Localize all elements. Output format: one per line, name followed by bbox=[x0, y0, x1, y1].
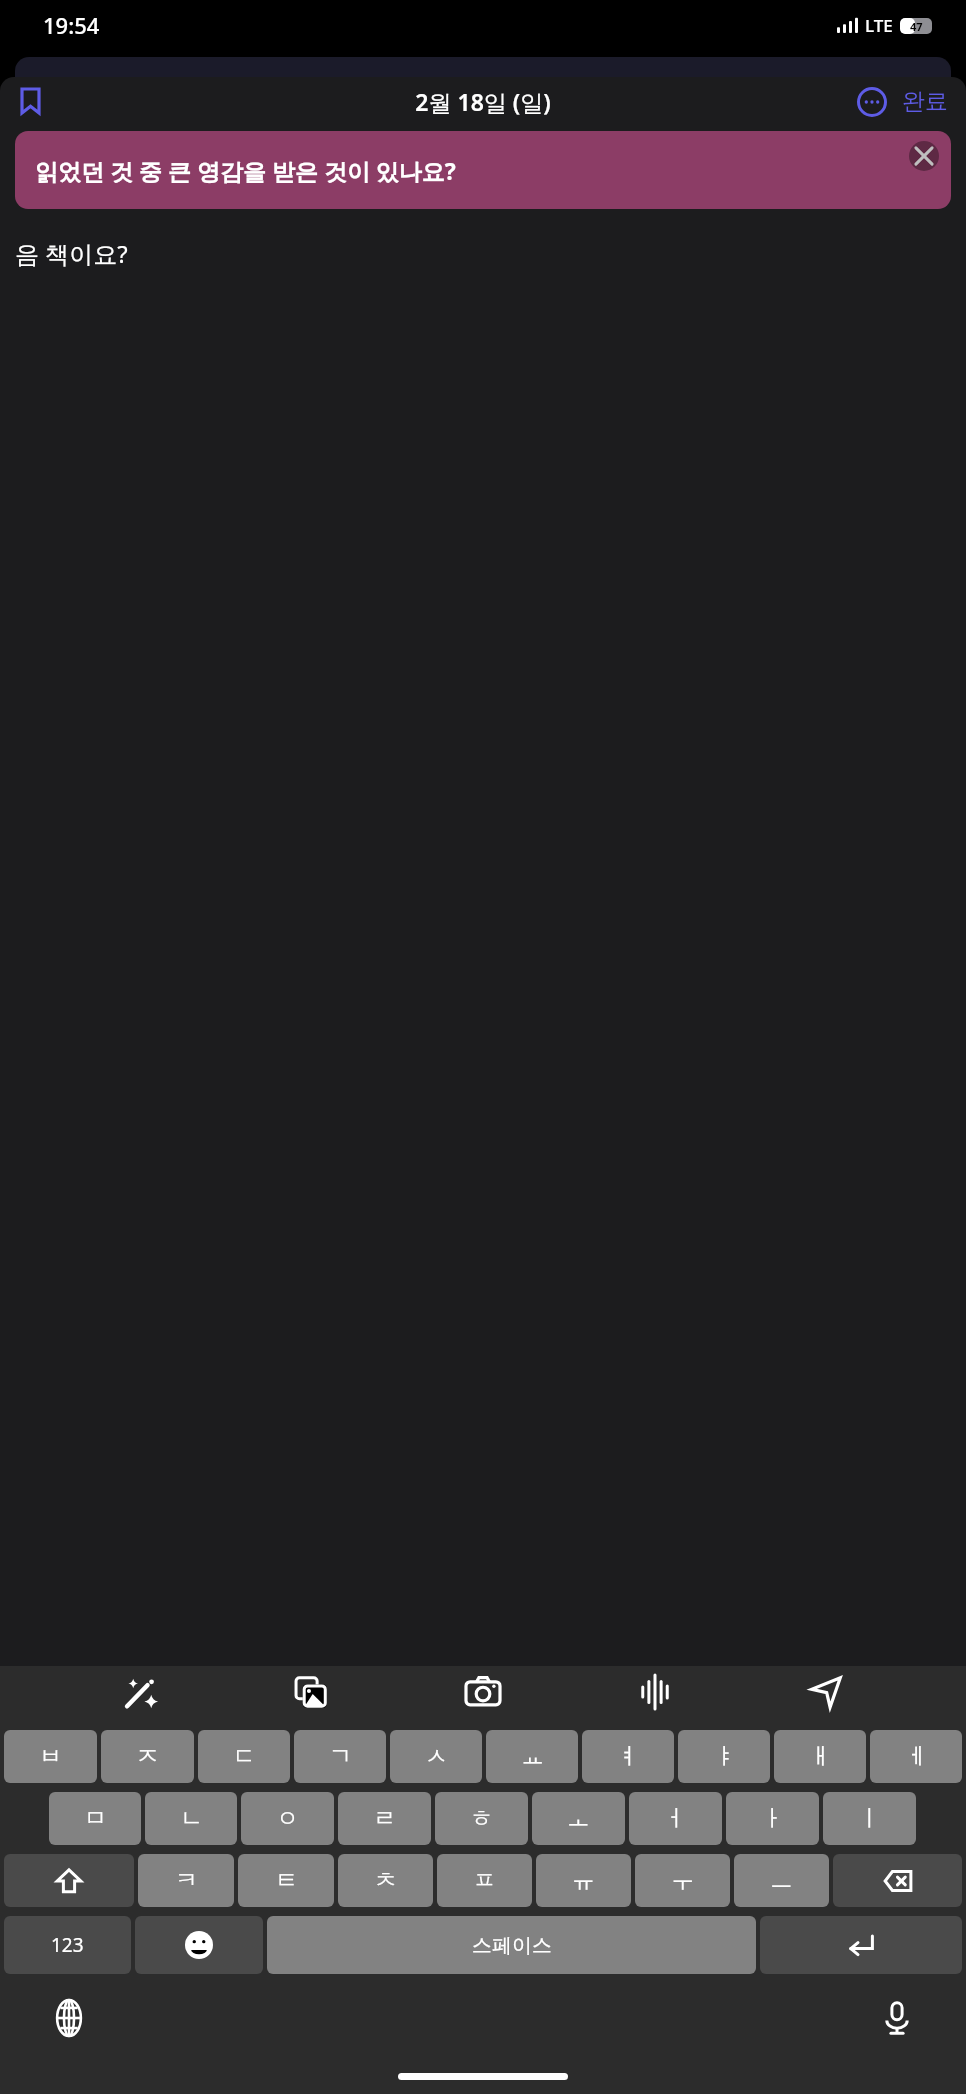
staticText: 19:54 bbox=[43, 10, 100, 40]
staticText: 완료 bbox=[902, 87, 948, 116]
staticText: LTE bbox=[865, 14, 893, 37]
button[interactable]: ㄱ bbox=[294, 1730, 386, 1783]
button[interactable]: ㅜ bbox=[635, 1854, 730, 1907]
button[interactable]: Photos bbox=[279, 1666, 343, 1718]
button[interactable]: ㅛ bbox=[486, 1730, 578, 1783]
button[interactable]: ㅑ bbox=[678, 1730, 770, 1783]
button[interactable]: ㅂ bbox=[4, 1730, 97, 1783]
button[interactable]: ㅁ bbox=[49, 1792, 141, 1845]
staticText: ㅋ bbox=[175, 1866, 198, 1895]
button[interactable]: Camera bbox=[451, 1666, 515, 1718]
button[interactable]: ㅌ bbox=[238, 1854, 334, 1907]
staticText: ㅓ bbox=[664, 1804, 687, 1833]
button[interactable]: ㅏ bbox=[726, 1792, 819, 1845]
button[interactable]: ㄹ bbox=[338, 1792, 431, 1845]
button[interactable]: ㅐ bbox=[774, 1730, 866, 1783]
button[interactable]: ㅡ bbox=[734, 1854, 829, 1907]
button[interactable]: ㅇ bbox=[241, 1792, 334, 1845]
button[interactable]: Bookmark bbox=[10, 81, 50, 121]
staticText: ㅜ bbox=[671, 1866, 694, 1895]
staticText: ㅣ bbox=[858, 1804, 881, 1833]
button[interactable]: 읽었던 것 중 큰 영감을 받은 것이 있나요? bbox=[15, 131, 951, 209]
button[interactable]: Send bbox=[794, 1666, 858, 1718]
staticText: ㅇ bbox=[276, 1804, 299, 1833]
button[interactable]: ㅠ bbox=[536, 1854, 631, 1907]
button[interactable]: ㄴ bbox=[145, 1792, 237, 1845]
button[interactable]: ㅣ bbox=[823, 1792, 916, 1845]
staticText: ㅕ bbox=[617, 1742, 640, 1771]
button[interactable]: Emoji bbox=[135, 1916, 263, 1974]
button[interactable]: ㅅ bbox=[390, 1730, 482, 1783]
button[interactable]: ㅔ bbox=[870, 1730, 962, 1783]
staticText: ㅍ bbox=[473, 1866, 496, 1895]
button[interactable]: Close bbox=[907, 139, 941, 173]
button[interactable]: 123 bbox=[4, 1916, 131, 1974]
button[interactable]: Change keyboard bbox=[45, 1994, 93, 2042]
staticText: 읽었던 것 중 큰 영감을 받은 것이 있나요? bbox=[35, 155, 456, 186]
button[interactable]: ㄷ bbox=[198, 1730, 290, 1783]
button[interactable]: Dictate bbox=[873, 1994, 921, 2042]
button[interactable]: ㅗ bbox=[532, 1792, 625, 1845]
button[interactable]: Shift bbox=[4, 1854, 134, 1907]
staticText: ㅅ bbox=[425, 1742, 448, 1771]
staticText: ㅛ bbox=[521, 1742, 544, 1771]
staticText: ㅔ bbox=[905, 1742, 928, 1771]
staticText: 47 bbox=[910, 19, 923, 34]
staticText: 123 bbox=[51, 1932, 84, 1958]
button[interactable]: Backspace bbox=[833, 1854, 962, 1907]
button[interactable]: ㅊ bbox=[338, 1854, 433, 1907]
button[interactable]: ㅍ bbox=[437, 1854, 532, 1907]
button[interactable]: Magic bbox=[108, 1666, 172, 1718]
staticText: ㅈ bbox=[136, 1742, 159, 1771]
staticText: 음 책이요? bbox=[15, 237, 128, 270]
staticText: ㅎ bbox=[470, 1804, 493, 1833]
staticText: ㅂ bbox=[39, 1742, 62, 1771]
button[interactable]: More options bbox=[852, 82, 892, 122]
button[interactable]: Audio bbox=[623, 1666, 687, 1718]
button[interactable]: 스페이스 bbox=[267, 1916, 756, 1974]
staticText: ㅌ bbox=[275, 1866, 298, 1895]
staticText: ㅠ bbox=[572, 1866, 595, 1895]
staticText: 2월 18일 (일) bbox=[415, 86, 551, 117]
button[interactable]: ㅕ bbox=[582, 1730, 674, 1783]
staticText: 스페이스 bbox=[472, 1933, 552, 1958]
staticText: ㅡ bbox=[770, 1866, 793, 1895]
button[interactable]: ㅋ bbox=[138, 1854, 234, 1907]
staticText: ㅗ bbox=[567, 1804, 590, 1833]
staticText: ㅐ bbox=[809, 1742, 832, 1771]
staticText: ㄷ bbox=[233, 1742, 256, 1771]
staticText: ㅊ bbox=[374, 1866, 397, 1895]
staticText: ㅁ bbox=[84, 1804, 107, 1833]
staticText: ㄱ bbox=[329, 1742, 352, 1771]
button[interactable]: ㅎ bbox=[435, 1792, 528, 1845]
button[interactable]: 완료 bbox=[898, 81, 952, 122]
staticText: ㄴ bbox=[180, 1804, 203, 1833]
staticText: ㅏ bbox=[761, 1804, 784, 1833]
staticText: ㅑ bbox=[713, 1742, 736, 1771]
button[interactable]: Return bbox=[760, 1916, 962, 1974]
button[interactable]: ㅈ bbox=[101, 1730, 194, 1783]
staticText: ㄹ bbox=[373, 1804, 396, 1833]
button[interactable]: ㅓ bbox=[629, 1792, 722, 1845]
